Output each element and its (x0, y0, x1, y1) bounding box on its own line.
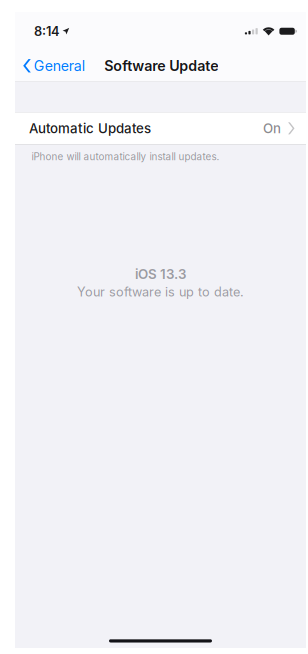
staticText: Automatic Updates (29, 120, 151, 136)
staticText: 8:14 (34, 23, 60, 39)
staticText: iOS 13.3 (135, 266, 186, 282)
staticText: Software Update (104, 57, 218, 74)
staticText: General (34, 57, 85, 74)
button[interactable]: Automatic Updates (15, 113, 306, 144)
staticText: iPhone will automatically install update… (31, 151, 219, 162)
staticText: Your software is up to date. (77, 284, 244, 299)
staticText: On (263, 120, 281, 136)
button[interactable]: General (15, 51, 92, 80)
